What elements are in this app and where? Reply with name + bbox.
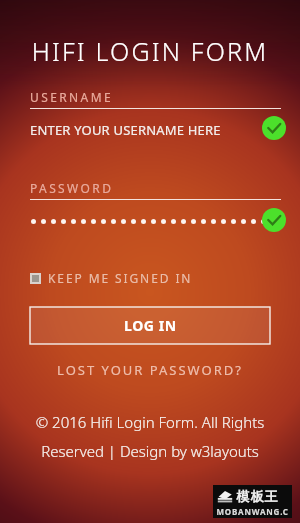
staticText: Reserved | Design by w3layouts: [0, 441, 300, 461]
staticText: KEEP ME SIGNED IN: [48, 270, 193, 286]
staticText: HIFI LOGIN FORM: [0, 34, 300, 68]
staticText: 模板王: [236, 488, 278, 504]
staticText: LOG IN: [124, 316, 177, 335]
other: Valid: [262, 208, 286, 232]
staticText: MOBANWANG.COM: [213, 506, 292, 518]
staticText: © 2016 Hifi Login Form. All Rights: [0, 412, 300, 432]
button[interactable]: LOST YOUR PASSWORD?: [0, 361, 300, 379]
button[interactable]: [31, 219, 271, 224]
button[interactable]: ENTER YOUR USERNAME HERE: [30, 121, 221, 139]
staticText: USERNAME: [30, 89, 114, 105]
staticText: PASSWORD: [30, 180, 114, 196]
button[interactable]: KEEP ME SIGNED IN: [30, 270, 193, 286]
other: Valid: [262, 116, 286, 140]
button[interactable]: LOG IN: [30, 307, 270, 344]
